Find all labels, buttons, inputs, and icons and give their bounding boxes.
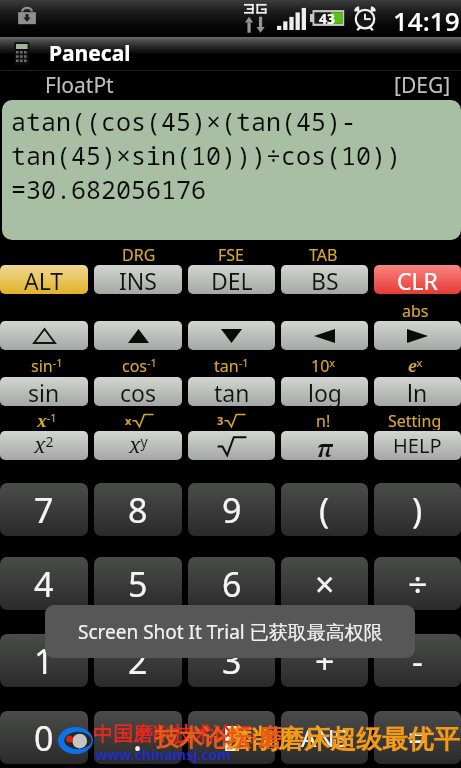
staticText: log (308, 377, 342, 406)
staticText: - (412, 638, 423, 684)
button[interactable]: CLR (374, 265, 461, 294)
button[interactable]: - (374, 634, 461, 687)
button[interactable]: INS (94, 265, 182, 294)
button[interactable]: Up (94, 321, 182, 350)
staticText: HELP (393, 432, 442, 459)
staticText: 8 (128, 487, 148, 533)
staticText: [DEG] (394, 71, 451, 100)
button[interactable]: π (281, 431, 368, 460)
button[interactable]: = (374, 711, 461, 764)
staticText: ln (407, 377, 428, 406)
button[interactable]: cos (94, 377, 182, 406)
staticText: Panecal (49, 39, 131, 68)
staticText: = (408, 715, 428, 761)
staticText: ANS (301, 721, 348, 754)
staticText: 3 (217, 413, 224, 428)
staticText: tan-1 (214, 355, 249, 375)
staticText: ) (412, 487, 423, 533)
button[interactable]: xy (94, 431, 182, 460)
staticText: CLR (397, 265, 438, 294)
staticText: tan(45)×sin(10)))÷cos(10)) (11, 138, 402, 172)
staticText: 1 (34, 638, 54, 684)
button[interactable]: + (281, 634, 368, 687)
staticText: × (315, 561, 335, 607)
staticText: π (317, 431, 333, 460)
button[interactable]: Left (281, 321, 368, 350)
button[interactable]: sin (0, 377, 88, 406)
button[interactable]: . (94, 711, 182, 764)
button[interactable]: 6 (188, 557, 275, 610)
button[interactable]: Right (374, 321, 461, 350)
staticText: n! (316, 410, 331, 430)
staticText: cos (120, 377, 156, 406)
button[interactable]: ANS (281, 711, 368, 764)
staticText: BS (311, 265, 339, 294)
other: Up (128, 329, 149, 343)
staticText: + (315, 638, 335, 684)
staticText: x (125, 413, 132, 428)
button[interactable]: E (188, 711, 275, 764)
button[interactable]: log (281, 377, 368, 406)
button[interactable]: 2 (94, 634, 182, 687)
button[interactable]: × (281, 557, 368, 610)
button[interactable]: tan (188, 377, 275, 406)
staticText: 磨削磨床超级最优平台 (226, 723, 461, 756)
staticText: FloatPt (45, 71, 114, 100)
staticText: 6 (222, 561, 242, 607)
button[interactable]: ÷ (374, 557, 461, 610)
staticText: www.chinamsj.com (95, 745, 231, 764)
button[interactable]: 7 (0, 483, 88, 536)
staticText: FSE (218, 244, 244, 264)
staticText: 3 (222, 638, 242, 684)
staticText: cos-1 (122, 355, 157, 375)
other: Down (221, 329, 242, 343)
staticText: 中国磨削技术论坛 (93, 722, 253, 747)
button[interactable] (188, 431, 275, 460)
button[interactable]: HELP (374, 431, 461, 460)
button[interactable]: DEL (188, 265, 275, 294)
staticText: 9 (222, 487, 242, 533)
staticText: x-1 (37, 410, 57, 430)
button[interactable]: BS (281, 265, 368, 294)
staticText: DRG (122, 244, 156, 264)
staticText: sin (28, 377, 60, 406)
button[interactable]: 3 (188, 634, 275, 687)
staticText: ALT (24, 265, 64, 294)
button[interactable]: ( (281, 483, 368, 536)
staticText: 5 (128, 561, 148, 607)
button[interactable]: 9 (188, 483, 275, 536)
button[interactable]: ALT (0, 265, 88, 294)
staticText: atan((cos(45)×(tan(45)- (11, 104, 357, 138)
button[interactable]: ln (374, 377, 461, 406)
staticText: ÷ (408, 561, 428, 607)
staticText: sin-1 (31, 355, 63, 375)
staticText: xy (129, 431, 148, 460)
button[interactable]: 5 (94, 557, 182, 610)
staticText: 43 (319, 9, 336, 28)
button[interactable]: Down (188, 321, 275, 350)
staticText: . (133, 715, 143, 761)
other: Left (314, 329, 335, 343)
button[interactable]: 4 (0, 557, 88, 610)
staticText: 10x (311, 355, 336, 375)
staticText: ex (408, 355, 423, 375)
staticText: DEL (211, 265, 253, 294)
button[interactable]: 8 (94, 483, 182, 536)
button[interactable]: ) (374, 483, 461, 536)
staticText: tan (214, 377, 250, 406)
staticText: 4 (34, 561, 54, 607)
staticText: 14:19 (393, 3, 460, 38)
staticText: x2 (34, 431, 54, 460)
staticText: ( (319, 487, 330, 533)
button[interactable]: 0 (0, 711, 88, 764)
staticText: Setting (388, 410, 442, 430)
button[interactable]: Insert cursor (0, 321, 88, 350)
staticText: 技术论坛·磨 (155, 720, 282, 753)
staticText: 7 (34, 487, 54, 533)
button[interactable]: 1 (0, 634, 88, 687)
staticText: 0 (34, 715, 54, 761)
staticText: E (222, 715, 241, 761)
button[interactable]: x2 (0, 431, 88, 460)
staticText: TAB (309, 244, 338, 264)
staticText: 2 (128, 638, 148, 684)
